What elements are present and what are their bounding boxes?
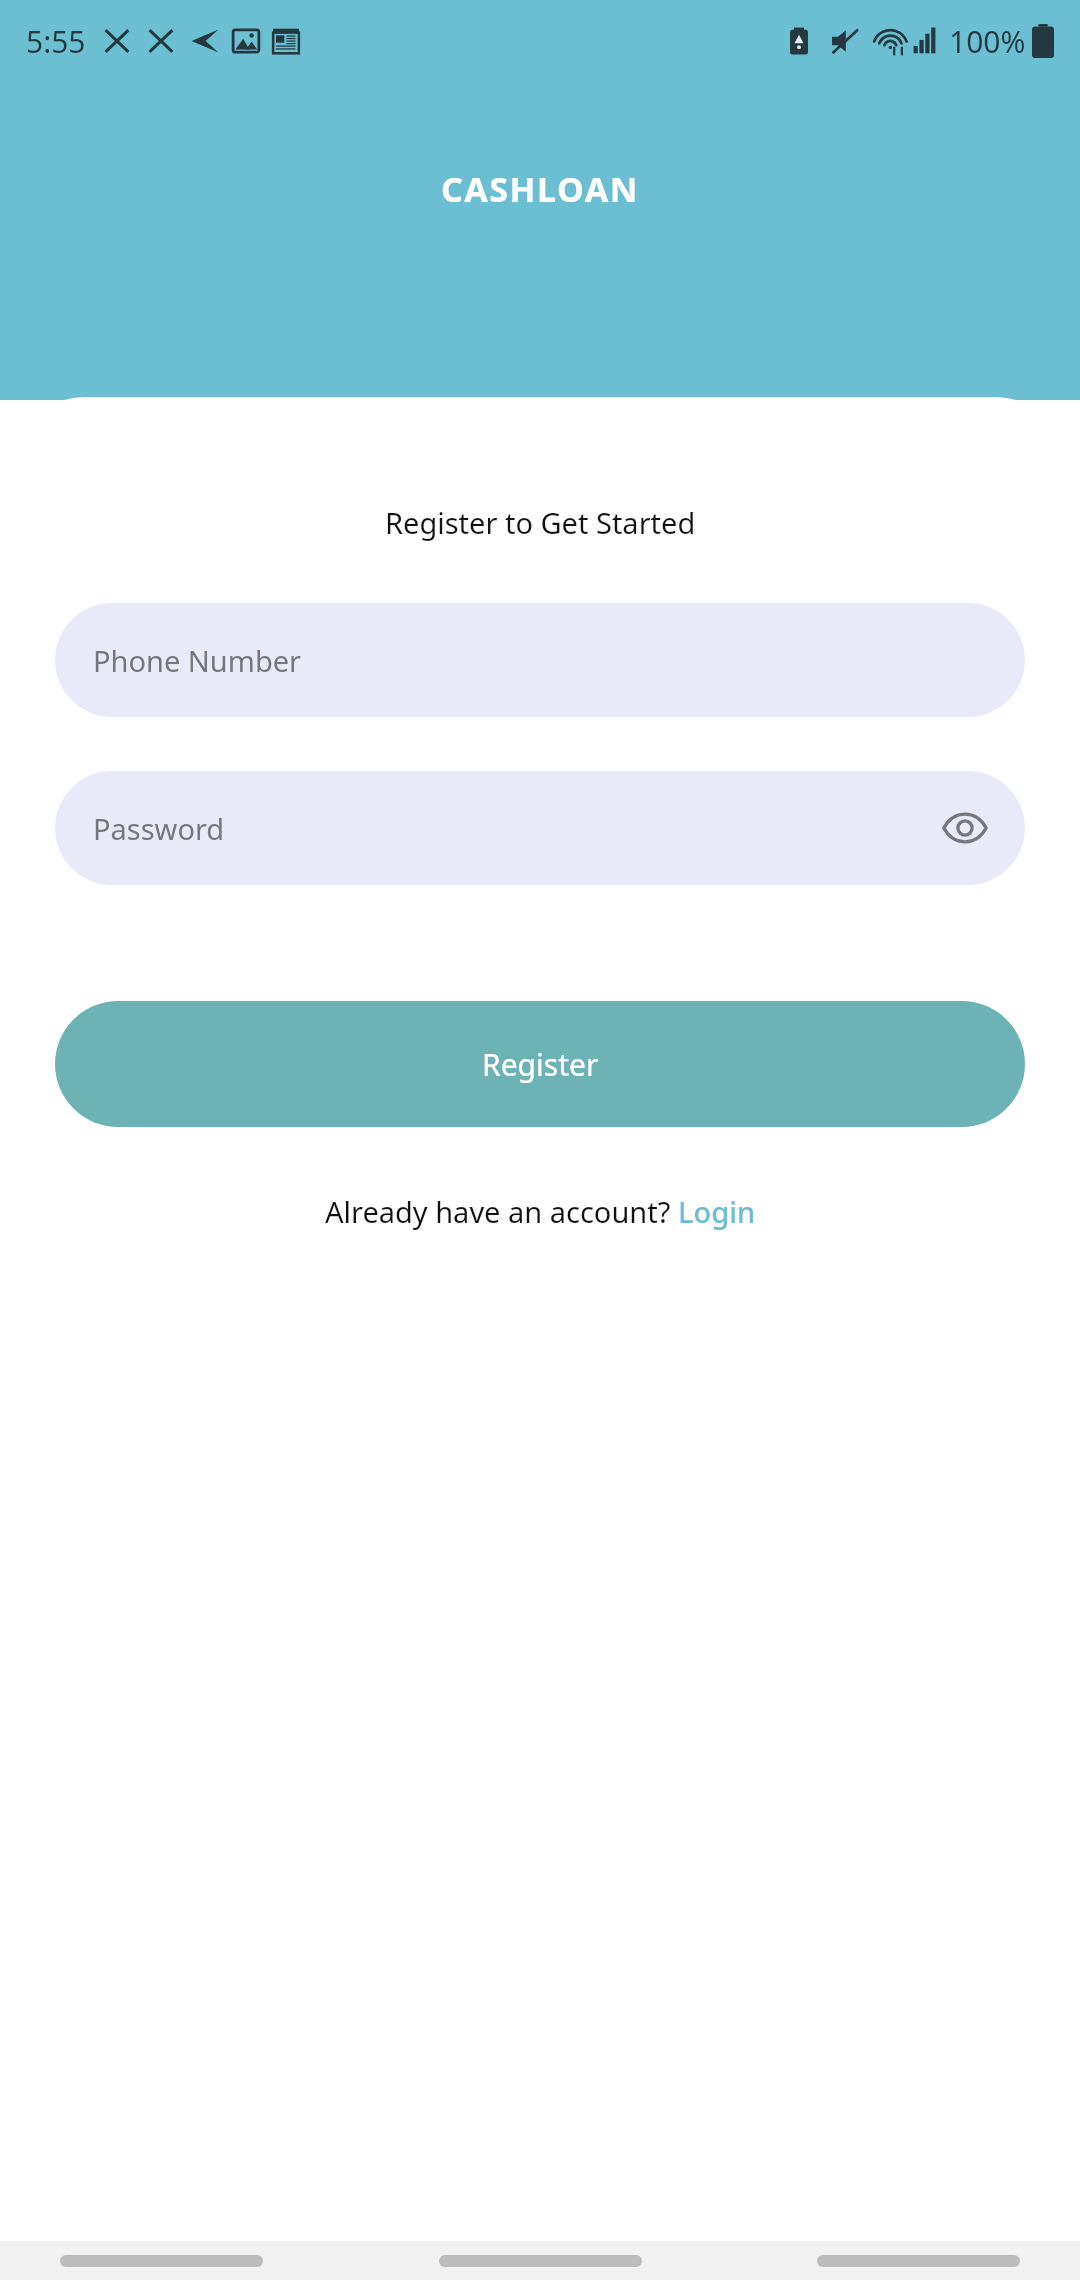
staticText: 100% [949, 21, 1026, 62]
button[interactable]: Login [678, 1192, 756, 1231]
button[interactable]: Register [55, 1001, 1025, 1127]
staticText: Already have an account? [325, 1192, 678, 1231]
staticText: Register to Get Started [385, 503, 696, 542]
staticText: Register [482, 1044, 599, 1085]
button[interactable]: Phone Number [55, 603, 1025, 717]
button[interactable]: Recents [817, 2255, 1020, 2267]
staticText: Login [678, 1192, 756, 1231]
staticText: Phone Number [93, 641, 302, 680]
staticText: Password [93, 809, 225, 848]
button[interactable]: Home [439, 2255, 642, 2267]
staticText: 5:55 [26, 21, 86, 62]
button[interactable]: Show password [933, 796, 997, 860]
button[interactable]: Back [60, 2255, 263, 2267]
staticText: CASHLOAN [441, 166, 639, 212]
button[interactable]: Password [55, 771, 1025, 885]
